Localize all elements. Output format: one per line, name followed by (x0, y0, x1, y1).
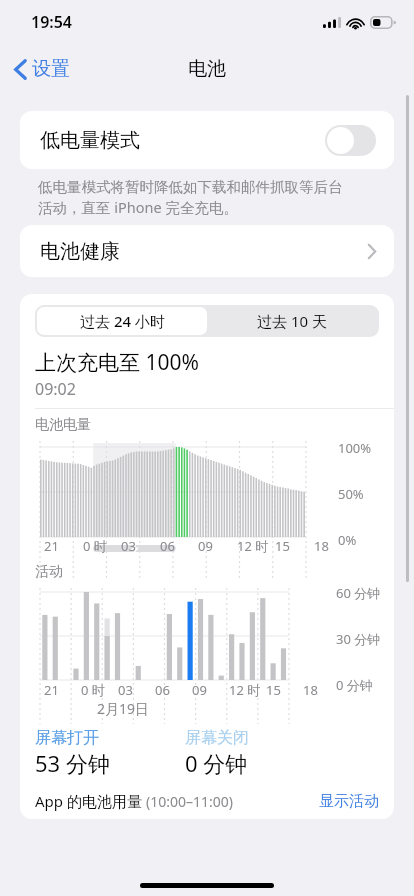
staticText: 03 (118, 681, 133, 699)
staticText: 0% (338, 531, 357, 549)
button[interactable]: 显示活动 (319, 792, 379, 811)
staticText: 15 (266, 681, 281, 699)
staticText: 19:54 (31, 11, 73, 33)
staticText: 过去 10 天 (257, 311, 327, 331)
staticText: 0 分钟 (336, 676, 373, 694)
button[interactable]: 低电量模式 (20, 111, 394, 169)
staticText: 06 (155, 681, 170, 699)
button[interactable]: 过去 24 小时 (37, 307, 207, 335)
button[interactable]: 屏幕打开 (35, 728, 185, 778)
staticText: 30 分钟 (336, 630, 381, 648)
staticText: 0 时 (81, 681, 105, 699)
staticText: 06 (160, 537, 175, 555)
staticText: 低电量模式 (40, 128, 140, 153)
button[interactable]: 电池健康 (20, 225, 394, 277)
staticText: 低电量模式将暂时降低如下载和邮件抓取等后台 活动，直至 iPhone 完全充电。 (38, 178, 343, 218)
button[interactable]: 过去 10 天 (207, 307, 377, 335)
staticText: 0 分钟 (185, 748, 248, 778)
staticText: 18 (303, 681, 318, 699)
staticText: 60 分钟 (336, 584, 381, 602)
button[interactable]: 低电量模式开关 (325, 125, 376, 156)
staticText: 0 时 (83, 537, 107, 555)
staticText: 12 时 (229, 681, 261, 699)
staticText: App 的电池用量 (35, 791, 142, 811)
staticText: (10:00–11:00) (146, 792, 233, 811)
staticText: 电池健康 (40, 239, 120, 264)
staticText: 设置 (32, 57, 70, 81)
staticText: 活动 (35, 563, 63, 581)
staticText: 过去 24 小时 (80, 311, 165, 331)
staticText: 12 时 (237, 537, 269, 555)
staticText: 18 (314, 537, 329, 555)
staticText: 上次充电至 100% (35, 348, 199, 377)
staticText: 2月19日 (97, 699, 150, 718)
staticText: 15 (275, 537, 290, 555)
staticText: 21 (44, 681, 59, 699)
staticText: 09:02 (35, 378, 76, 400)
staticText: 53 分钟 (35, 748, 110, 778)
staticText: 09 (198, 537, 213, 555)
staticText: 电池电量 (35, 416, 91, 434)
staticText: 21 (44, 537, 59, 555)
staticText: 100% (338, 439, 372, 457)
button[interactable]: 屏幕关闭 (185, 728, 249, 778)
staticText: 电池 (188, 57, 226, 81)
staticText: 屏幕关闭 (185, 728, 249, 748)
button[interactable]: 设置 (10, 52, 74, 86)
staticText: 03 (121, 537, 136, 555)
staticText: 09 (192, 681, 207, 699)
staticText: 屏幕打开 (35, 728, 99, 748)
staticText: 50% (338, 485, 364, 503)
